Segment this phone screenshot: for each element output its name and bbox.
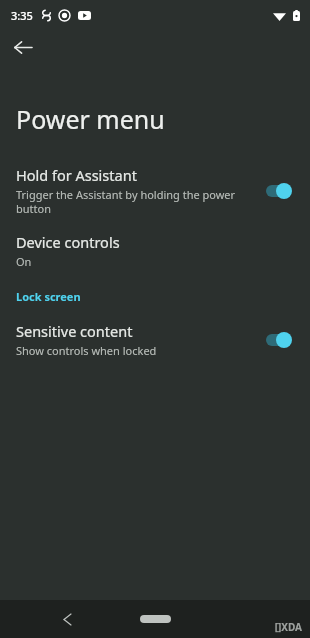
button[interactable]: Back [55,607,79,631]
button[interactable]: Home [132,609,178,629]
button[interactable]: Hold for Assistant [0,163,310,218]
staticText: Lock screen [16,289,81,304]
staticText: Sensitive content [16,321,133,341]
staticText: Hold for Assistant [16,165,137,185]
button[interactable]: Sensitive content [0,319,310,360]
staticText: Trigger the Assistant by holding the pow… [16,187,236,216]
button[interactable]: Back [6,30,40,64]
staticText: Device controls [16,232,120,252]
staticText: On [16,254,32,269]
staticText: Power menu [16,102,165,136]
button[interactable]: Toggle [260,328,296,352]
button[interactable]: Device controls [0,230,310,271]
staticText: []XDA [274,620,302,634]
staticText: Show controls when locked [16,343,157,358]
staticText: 3:35 [11,8,33,23]
button[interactable]: Toggle [260,179,296,203]
